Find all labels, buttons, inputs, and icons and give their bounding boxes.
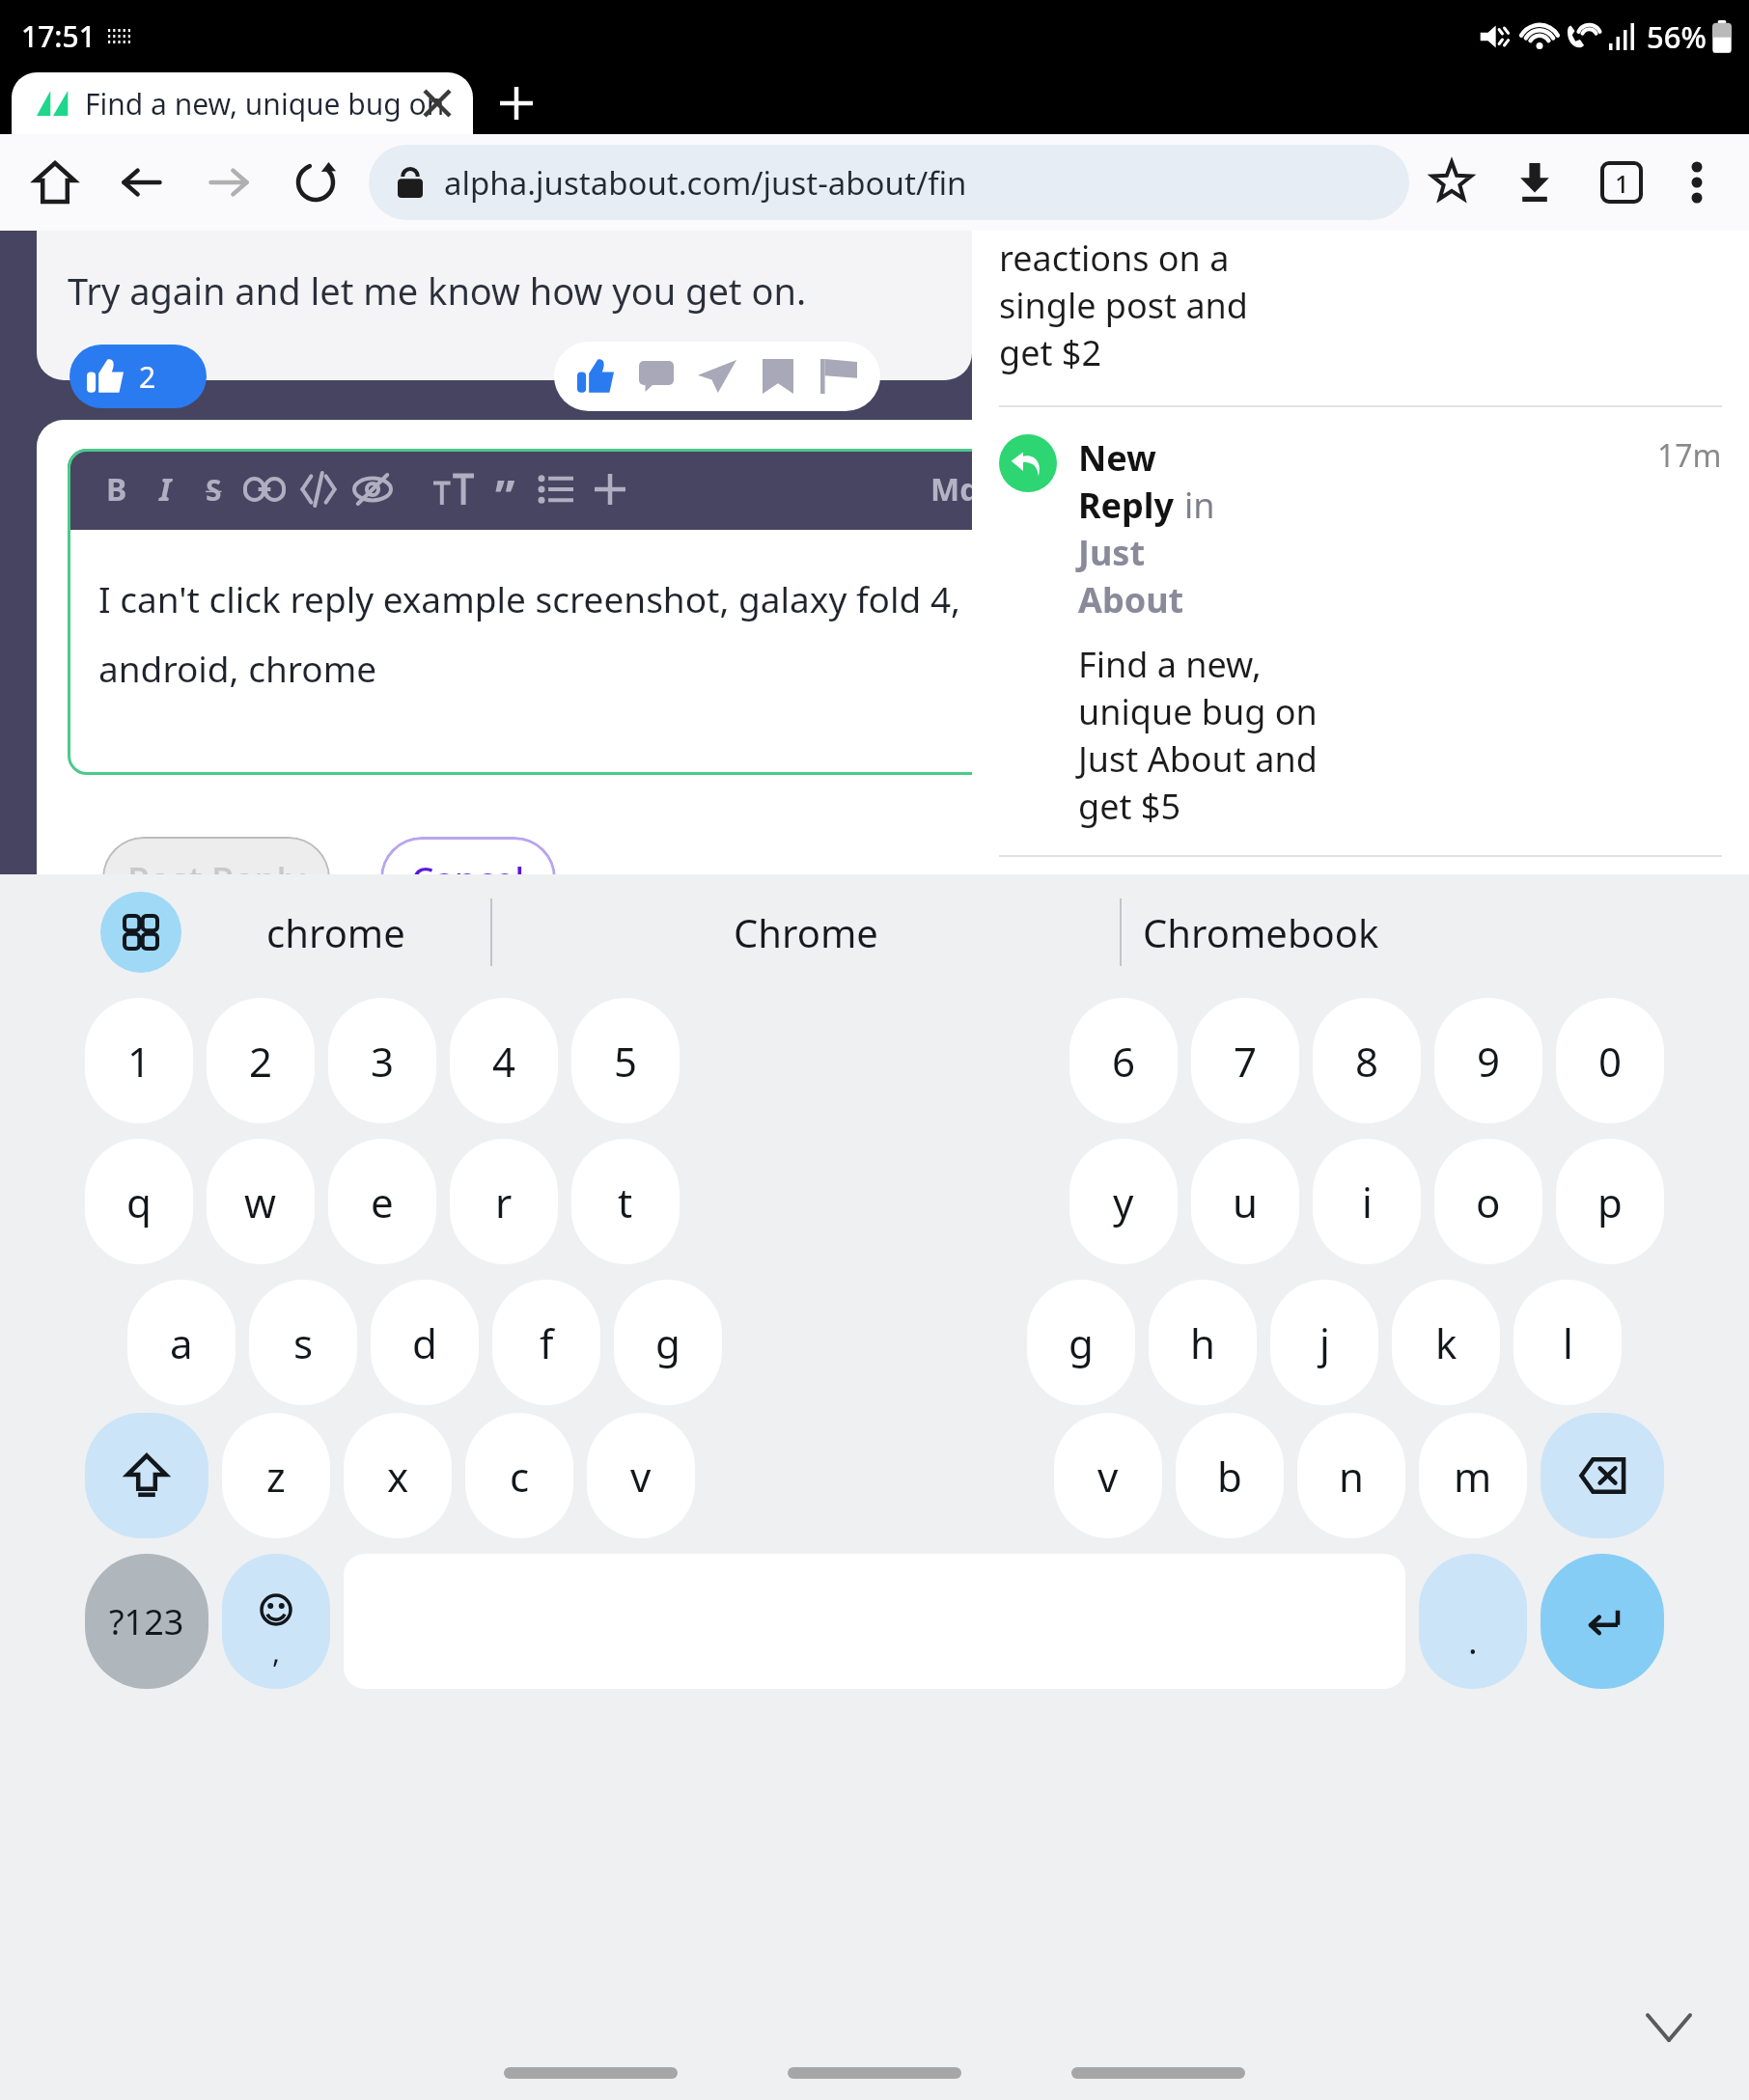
button[interactable]: b — [1176, 1413, 1284, 1538]
button[interactable]: 2 — [207, 998, 315, 1123]
button[interactable] — [85, 1413, 208, 1538]
staticText: v — [1097, 1449, 1119, 1504]
staticText: , — [272, 1632, 281, 1672]
button[interactable]: Keyboard toolbar — [100, 892, 181, 973]
button[interactable]: 1 — [85, 998, 193, 1123]
button[interactable]: Share — [693, 352, 741, 401]
button[interactable]: a — [127, 1280, 236, 1405]
button[interactable]: 3 — [328, 998, 436, 1123]
button[interactable]: l — [1513, 1280, 1622, 1405]
button[interactable]: Link — [237, 462, 291, 516]
button[interactable]: Code — [291, 462, 346, 516]
button[interactable]: Text size — [427, 462, 481, 516]
button[interactable]: New tab — [473, 72, 560, 134]
button[interactable]: m — [1419, 1413, 1527, 1538]
button[interactable]: k — [1392, 1280, 1500, 1405]
button[interactable]: Reload — [280, 147, 351, 218]
button[interactable]: Chrome — [492, 874, 1120, 990]
button[interactable]: 9 — [1434, 998, 1542, 1123]
button[interactable]: 7 — [1191, 998, 1299, 1123]
staticText: Md — [930, 468, 980, 511]
button[interactable]: Download — [1498, 146, 1571, 219]
button[interactable]: Emoji — [222, 1554, 330, 1689]
button[interactable]: Back — [106, 147, 178, 218]
button[interactable]: g — [1027, 1280, 1135, 1405]
button[interactable]: Enter — [1541, 1554, 1664, 1689]
button[interactable]: Period — [1419, 1554, 1527, 1689]
button[interactable]: Strikethrough — [189, 465, 237, 513]
button[interactable]: j — [1270, 1280, 1378, 1405]
button[interactable]: ?123 — [85, 1554, 208, 1689]
button[interactable]: v — [1054, 1413, 1162, 1538]
button[interactable]: Report — [815, 352, 863, 401]
button[interactable]: Comment — [632, 352, 680, 401]
staticText: q — [126, 1174, 152, 1230]
button[interactable]: List — [529, 462, 583, 516]
button[interactable]: Quote — [481, 465, 529, 513]
staticText: 4 — [492, 1034, 516, 1089]
staticText: android, chrome — [98, 644, 377, 692]
staticText: b — [1217, 1449, 1242, 1504]
button[interactable]: y — [1069, 1139, 1178, 1264]
staticText: New — [1078, 434, 1156, 482]
staticText: 17:51 — [21, 16, 96, 56]
staticText: get $2 — [999, 329, 1101, 376]
button[interactable]: alpha.justabout.com/just-about/fin — [369, 145, 1409, 220]
button[interactable]: s — [249, 1280, 357, 1405]
staticText: 17m — [1657, 434, 1722, 477]
button[interactable]: New — [999, 434, 1722, 830]
button[interactable]: 2 — [69, 345, 207, 408]
button[interactable]: Find a new, unique bug on Ju — [12, 72, 473, 134]
staticText: v — [630, 1449, 652, 1504]
staticText: alpha.justabout.com/just-about/fin — [444, 161, 967, 205]
button[interactable]: i — [1313, 1139, 1421, 1264]
button[interactable]: Italic — [141, 465, 189, 513]
button[interactable]: o — [1434, 1139, 1542, 1264]
button[interactable]: d — [371, 1280, 479, 1405]
button[interactable]: x — [344, 1413, 452, 1538]
button[interactable]: Cancel — [380, 837, 556, 920]
button[interactable]: u — [1191, 1139, 1299, 1264]
button[interactable]: v — [587, 1413, 695, 1538]
button[interactable]: More options — [1664, 150, 1730, 215]
button[interactable]: r — [450, 1139, 558, 1264]
staticText: 9 — [1477, 1034, 1501, 1089]
button[interactable]: 8 — [1313, 998, 1421, 1123]
button[interactable]: Close tab — [411, 77, 463, 129]
button[interactable]: 0 — [1556, 998, 1664, 1123]
button[interactable]: More — [583, 462, 637, 516]
button[interactable]: f — [492, 1280, 600, 1405]
button[interactable]: t — [571, 1139, 680, 1264]
button[interactable]: w — [207, 1139, 315, 1264]
staticText: r — [495, 1174, 513, 1230]
staticText: m — [1454, 1449, 1492, 1504]
button[interactable]: g — [614, 1280, 722, 1405]
button[interactable]: e — [328, 1139, 436, 1264]
staticText: j — [1319, 1315, 1330, 1370]
button[interactable]: Post Reply — [102, 837, 330, 920]
button[interactable]: chrome — [181, 874, 490, 990]
button[interactable]: h — [1149, 1280, 1257, 1405]
button[interactable] — [1541, 1413, 1664, 1538]
button[interactable]: n — [1297, 1413, 1405, 1538]
button[interactable]: Bookmark — [754, 352, 802, 401]
button[interactable]: 6 — [1069, 998, 1178, 1123]
button[interactable]: q — [85, 1139, 193, 1264]
staticText: reactions on a — [999, 235, 1230, 282]
button[interactable]: Chromebook — [1143, 906, 1379, 958]
button[interactable]: Tabs — [1585, 146, 1658, 219]
button[interactable]: p — [1556, 1139, 1664, 1264]
button[interactable]: Home — [19, 147, 91, 218]
button[interactable]: 5 — [571, 998, 680, 1123]
button[interactable]: Bookmark — [1415, 146, 1488, 219]
staticText: d — [412, 1315, 437, 1370]
button[interactable]: z — [222, 1413, 330, 1538]
button[interactable]: Hide preview — [346, 462, 400, 516]
button[interactable]: c — [465, 1413, 573, 1538]
button[interactable]: Like — [571, 352, 620, 401]
button[interactable]: B — [93, 465, 141, 513]
button[interactable]: 4 — [450, 998, 558, 1123]
button[interactable]: Hide keyboard — [1635, 1994, 1703, 2061]
button[interactable]: Forward — [193, 147, 264, 218]
